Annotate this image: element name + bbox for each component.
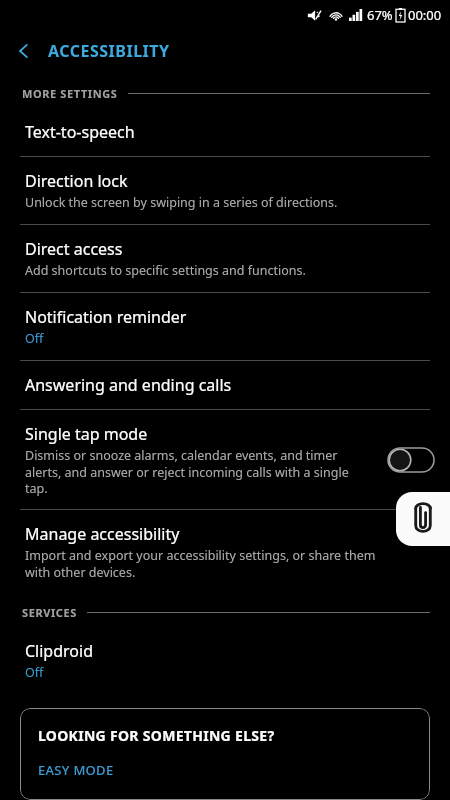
button[interactable]: Manage accessibility	[0, 510, 450, 593]
staticText: ACCESSIBILITY	[48, 40, 170, 62]
staticText: 67%	[367, 6, 393, 24]
button[interactable]: Answering and ending calls	[0, 361, 450, 409]
button[interactable]: Direction lock	[0, 157, 450, 224]
button[interactable]: Direct access	[0, 225, 450, 292]
staticText: SERVICES	[22, 605, 77, 620]
staticText: MORE SETTINGS	[22, 86, 118, 101]
staticText: Manage accessibility	[25, 523, 180, 545]
button[interactable]: EASY MODE	[38, 761, 414, 779]
staticText: Single tap mode	[25, 423, 148, 445]
button[interactable]: Single tap mode	[0, 410, 450, 509]
staticText: Notification reminder	[25, 306, 187, 328]
button[interactable]: Clipdroid	[0, 627, 450, 694]
staticText: Dismiss or snooze alarms, calendar event…	[25, 447, 355, 496]
staticText: Add shortcuts to specific settings and f…	[25, 262, 306, 279]
staticText: Off	[25, 664, 44, 681]
staticText: EASY MODE	[38, 761, 114, 779]
staticText: Import and export your accessibility set…	[25, 547, 380, 580]
staticText: Direct access	[25, 238, 123, 260]
staticText: Clipdroid	[25, 640, 93, 662]
staticText: 00:00	[408, 6, 442, 24]
staticText: Text-to-speech	[25, 121, 135, 143]
button[interactable]: Single tap mode toggle, off	[388, 448, 434, 472]
staticText: Answering and ending calls	[25, 374, 232, 396]
button[interactable]: Text-to-speech	[0, 108, 450, 156]
button[interactable]: Back	[0, 30, 48, 72]
button[interactable]: Notification reminder	[0, 293, 450, 360]
staticText: Off	[25, 330, 44, 347]
staticText: Unlock the screen by swiping in a series…	[25, 194, 338, 211]
staticText: LOOKING FOR SOMETHING ELSE?	[38, 726, 275, 745]
button[interactable]: Clipboard	[396, 492, 450, 546]
staticText: Direction lock	[25, 170, 128, 192]
